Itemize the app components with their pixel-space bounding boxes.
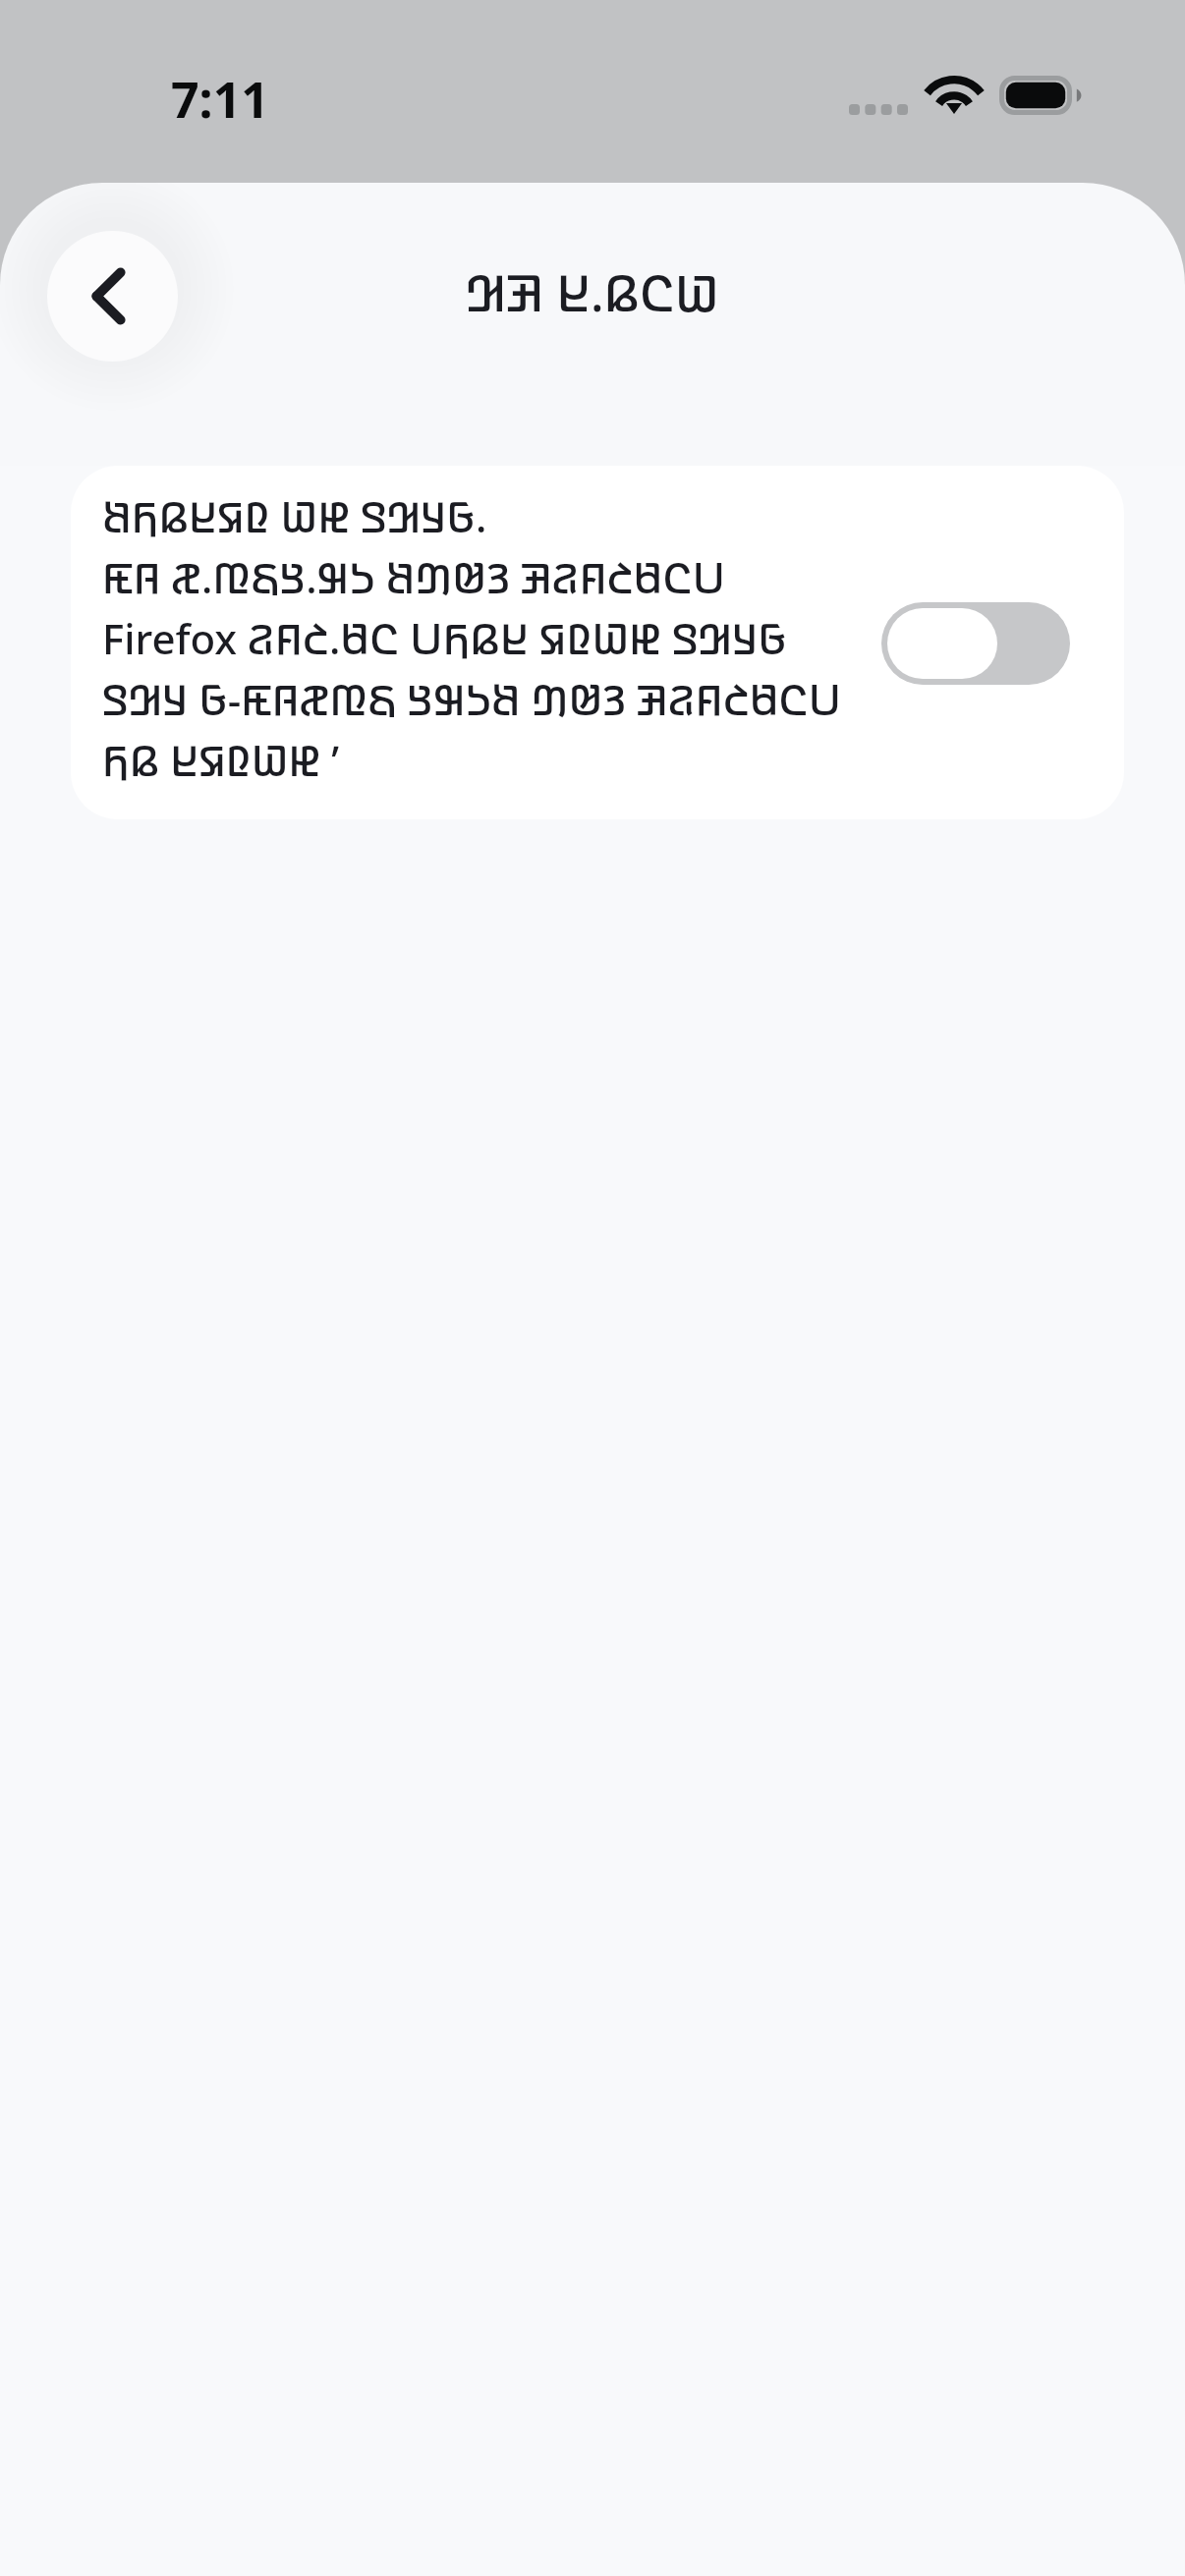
- button[interactable]: Toggle setting: [881, 602, 1070, 685]
- staticText: 𞤀𞤁𞤂𞤃 𞤄𞤅 𞤆𞤇𞤈𞤉𞤊𞤕. 𞤋𞤌𞤍𞤎𞤏𞤐𞤑 𞤒𞤓𞤔𞤕 𞤖𞤗.𞤘𞤙𞤚.𞤛 𞤜𞤝…: [102, 488, 870, 788]
- staticText: 𞤅𞤌𞤉.𞤈 𞤑𞤂: [466, 259, 719, 326]
- button[interactable]: 𞤀𞤁𞤂𞤃 𞤄𞤅 𞤆𞤇𞤈𞤉𞤊𞤕. 𞤋𞤌𞤍𞤎𞤏𞤐𞤑 𞤒𞤓𞤔𞤕 𞤖𞤗.𞤘𞤙𞤚.𞤛 𞤜𞤝…: [71, 466, 1124, 819]
- button[interactable]: Back: [47, 231, 178, 362]
- staticText: 7:11: [171, 66, 269, 133]
